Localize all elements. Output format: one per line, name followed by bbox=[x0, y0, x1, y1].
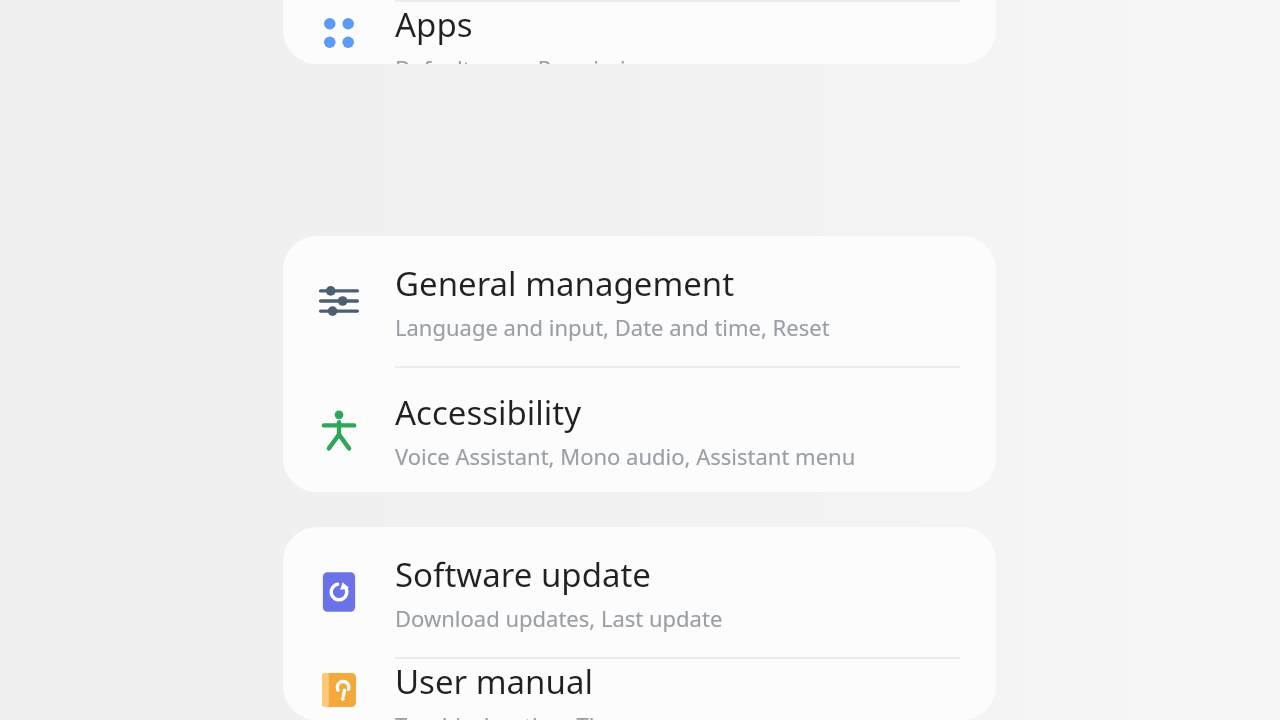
staticText: Download updates, Last update bbox=[395, 603, 723, 633]
staticText: General management bbox=[395, 261, 735, 306]
staticText: Software update bbox=[395, 552, 651, 597]
staticText: Language and input, Date and time, Reset bbox=[395, 312, 830, 342]
staticText: Default apps, Permission manager bbox=[395, 53, 753, 64]
staticText: Voice Assistant, Mono audio, Assistant m… bbox=[395, 441, 856, 471]
button[interactable]: Accessibility bbox=[283, 368, 996, 492]
staticText: Troubleshooting, Tips bbox=[395, 710, 619, 720]
staticText: User manual bbox=[395, 659, 593, 704]
staticText: Apps bbox=[395, 2, 473, 47]
staticText: Accessibility bbox=[395, 390, 582, 435]
button[interactable]: Apps bbox=[283, 2, 996, 64]
button[interactable]: General management bbox=[283, 236, 996, 366]
button[interactable]: Software update bbox=[283, 527, 996, 657]
button[interactable]: User manual bbox=[283, 659, 996, 720]
